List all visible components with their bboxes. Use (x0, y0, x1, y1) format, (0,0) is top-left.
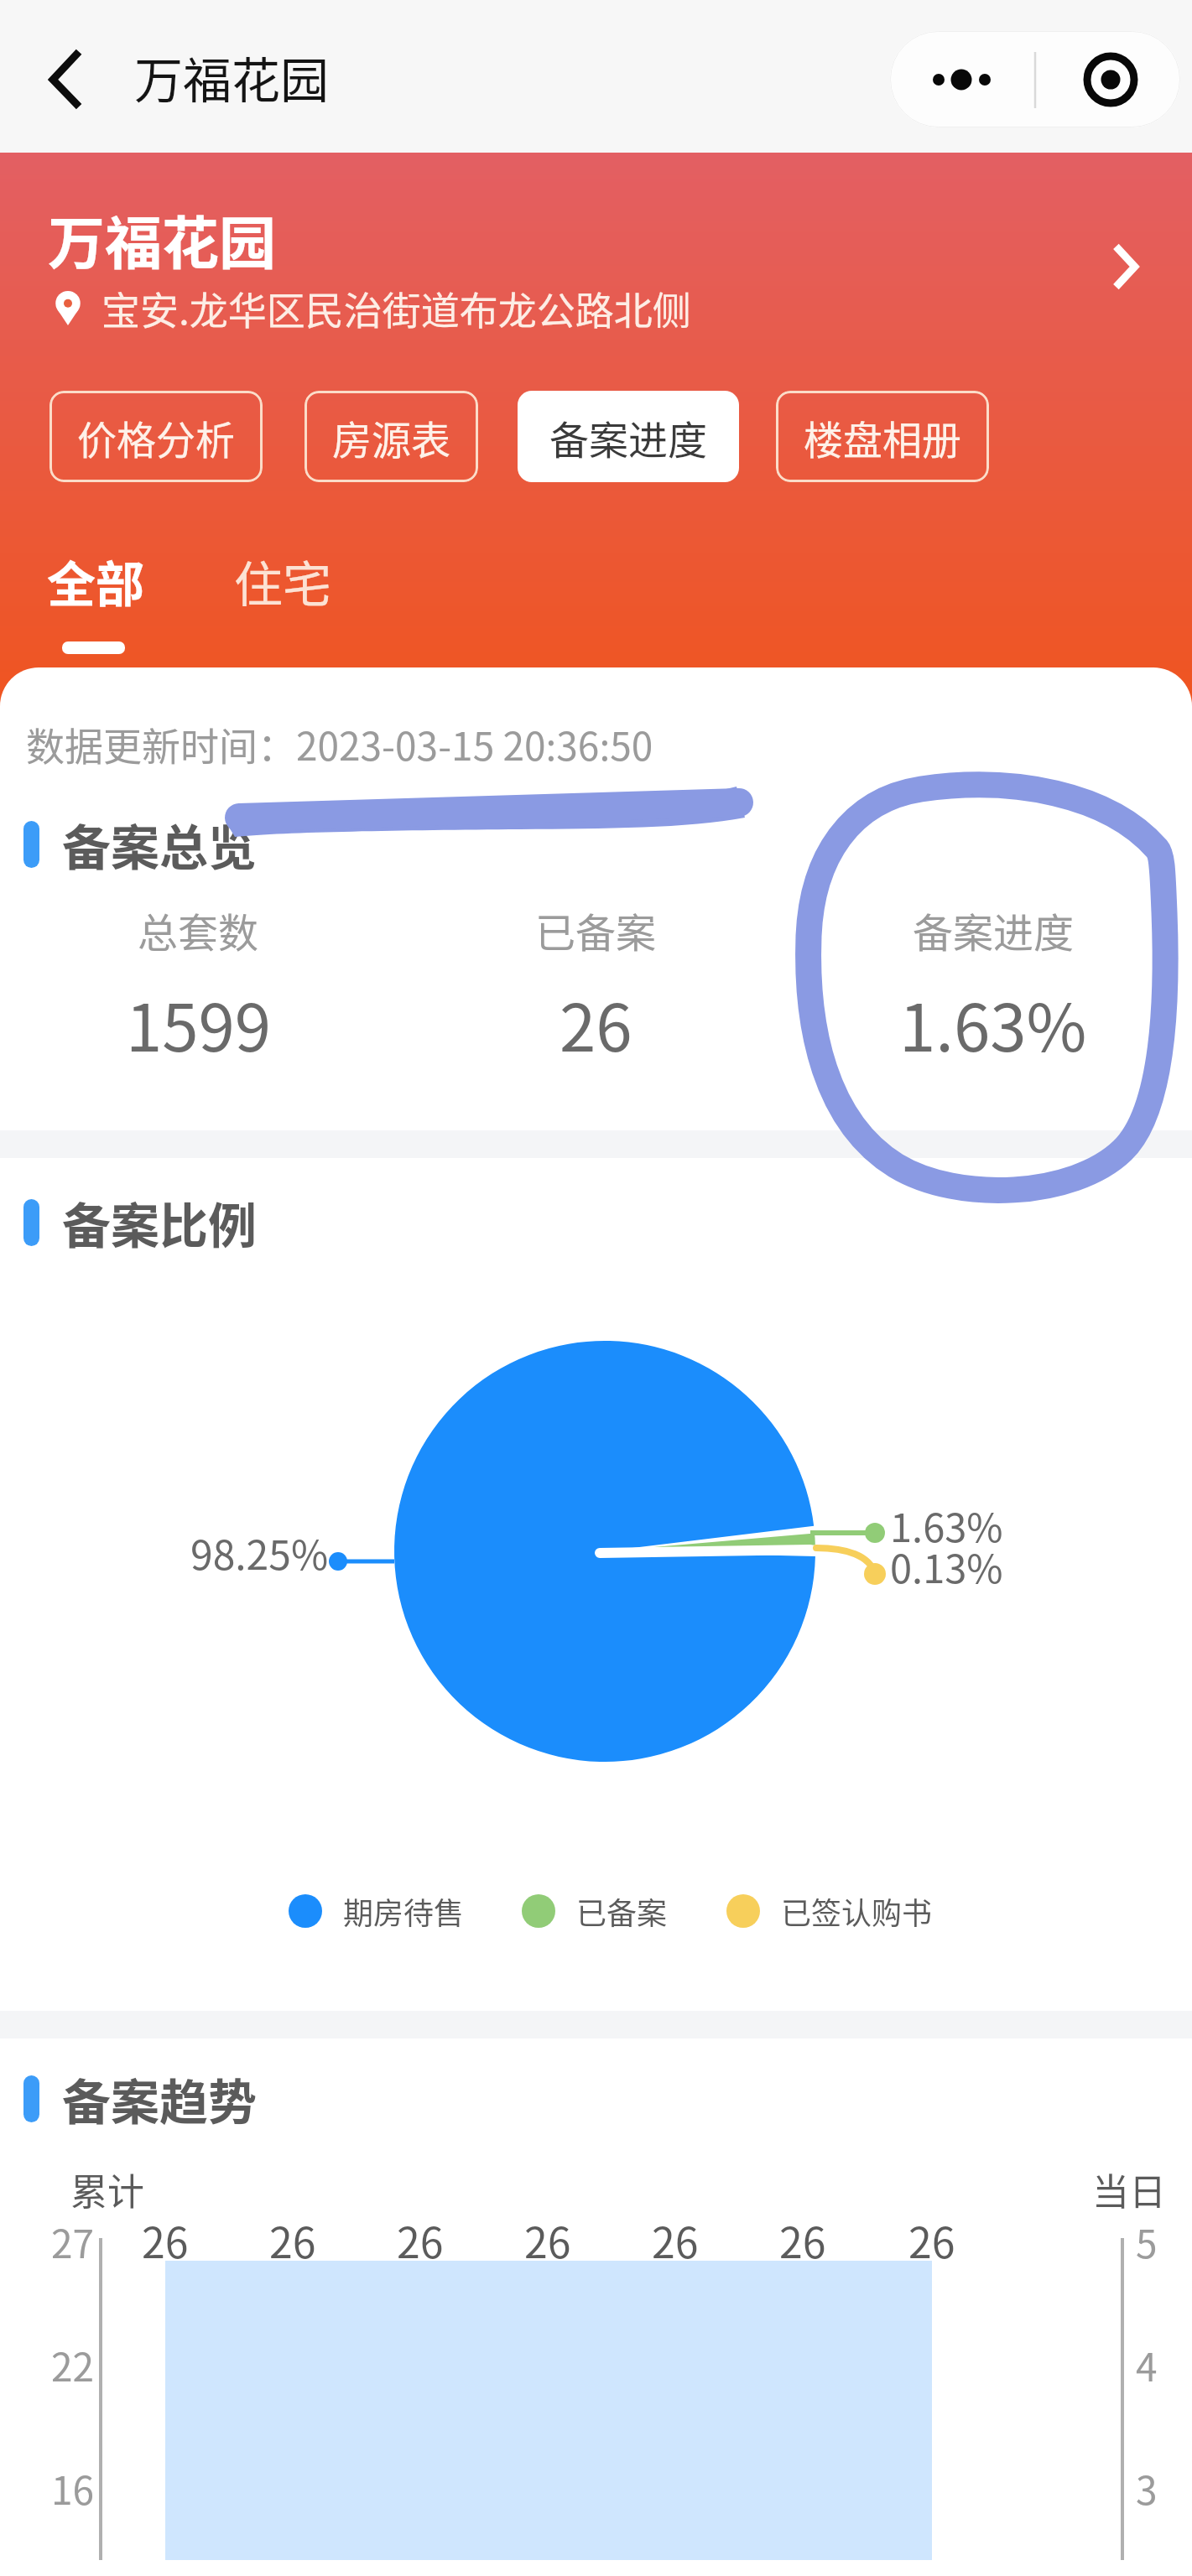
button[interactable]: More options (890, 31, 1035, 127)
staticText: 备案趋势 (62, 2064, 258, 2134)
button[interactable]: Open project details (1087, 231, 1159, 303)
button[interactable]: 房源表 (305, 391, 478, 482)
staticText: 已备案 (535, 901, 657, 959)
staticText: 26 (779, 2210, 826, 2270)
staticText: 1599 (126, 976, 272, 1071)
staticText: 万福花园 (134, 42, 330, 112)
staticText: 0.13% (890, 1537, 1003, 1594)
staticText: 房源表 (332, 408, 450, 465)
staticText: 价格分析 (77, 408, 235, 465)
staticText: 1.63% (899, 976, 1087, 1071)
staticText: 备案进度 (549, 408, 707, 465)
staticText: 22 (51, 2337, 95, 2393)
staticText: 已签认购书 (781, 1889, 933, 1933)
button[interactable]: 价格分析 (49, 391, 263, 482)
staticText: 1.63% (890, 1496, 1003, 1553)
staticText: 备案进度 (913, 901, 1075, 959)
button[interactable]: 备案进度 (518, 391, 739, 482)
staticText: 5 (1136, 2214, 1158, 2270)
staticText: 万福花园 (48, 198, 277, 280)
button[interactable]: 住宅 (221, 541, 346, 621)
staticText: 备案总览 (62, 809, 258, 880)
button[interactable]: 总套数 (0, 901, 397, 1071)
button[interactable]: 全部 (34, 541, 159, 621)
button[interactable]: 期房待售 (289, 1889, 465, 1933)
staticText: 26 (397, 2210, 444, 2270)
staticText: 已备案 (576, 1889, 668, 1933)
staticText: 宝安.龙华区民治街道布龙公路北侧 (102, 280, 691, 336)
button[interactable]: Close mini program (1035, 31, 1180, 127)
staticText: 26 (908, 2210, 955, 2270)
staticText: 总套数 (138, 901, 259, 959)
staticText: 16 (51, 2460, 95, 2516)
staticText: 98.25% (190, 1523, 329, 1581)
staticText: 楼盘相册 (804, 408, 961, 465)
staticText: 全部 (47, 546, 145, 616)
staticText: 26 (142, 2210, 189, 2270)
staticText: 数据更新时间：2023-03-15 20:36:50 (26, 716, 653, 772)
staticText: 备案比例 (62, 1187, 258, 1258)
staticText: 26 (269, 2210, 316, 2270)
staticText: 26 (560, 976, 632, 1071)
staticText: 期房待售 (343, 1889, 465, 1933)
staticText: 住宅 (234, 546, 332, 616)
button[interactable]: 楼盘相册 (776, 391, 989, 482)
button[interactable]: 已签认购书 (726, 1889, 933, 1933)
button[interactable]: 已备案 (397, 901, 794, 1071)
staticText: 26 (652, 2210, 699, 2270)
staticText: 当日 (1092, 2163, 1166, 2216)
staticText: 4 (1136, 2337, 1158, 2393)
staticText: 3 (1136, 2460, 1158, 2516)
button[interactable]: Back (17, 32, 109, 124)
button[interactable]: 已备案 (522, 1889, 668, 1933)
button[interactable]: 备案进度 (794, 901, 1192, 1071)
staticText: 累计 (70, 2163, 144, 2216)
staticText: 27 (51, 2214, 95, 2270)
staticText: 26 (524, 2210, 571, 2270)
